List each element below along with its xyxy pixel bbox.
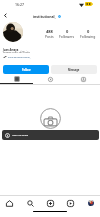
button[interactable]: Profile [84, 196, 98, 210]
button[interactable]: 0 [79, 29, 97, 39]
button[interactable]: Search [23, 196, 37, 210]
button[interactable]: 0 [58, 29, 76, 39]
staticText: Message [68, 68, 80, 72]
button[interactable]: Back [1, 11, 10, 20]
button[interactable]: linktr.ee/institutional_ [3, 55, 31, 59]
staticText: institutional_ [33, 14, 57, 19]
staticText: Followers [59, 34, 75, 39]
staticText: drawing charts for a living [3, 51, 30, 54]
staticText: linktr.ee/institutional_ [8, 56, 31, 59]
staticText: (´•ω•｀) [20, 49, 29, 52]
staticText: 488 [46, 29, 53, 34]
button[interactable]: Tagged [67, 75, 100, 83]
button[interactable]: Create [43, 196, 57, 210]
staticText: 0 [87, 29, 90, 34]
staticText: 0 [66, 29, 69, 34]
button[interactable]: Follow [3, 65, 49, 74]
button[interactable]: Reels [34, 75, 67, 83]
button[interactable]: Profile photo [3, 22, 23, 42]
button[interactable]: Message [51, 65, 97, 74]
button[interactable]: Posts grid [0, 75, 34, 83]
staticText: 16:27 [15, 2, 24, 7]
button[interactable]: User not found [2, 130, 99, 140]
button[interactable]: 488 [40, 29, 58, 39]
staticText: Juan Amaya [3, 48, 19, 52]
staticText: Following [80, 34, 96, 39]
staticText: Follow [22, 68, 31, 72]
staticText: Posts [45, 34, 54, 39]
staticText: User not found [12, 134, 29, 137]
button[interactable]: Reels [63, 196, 77, 210]
button[interactable]: Home [2, 196, 16, 210]
